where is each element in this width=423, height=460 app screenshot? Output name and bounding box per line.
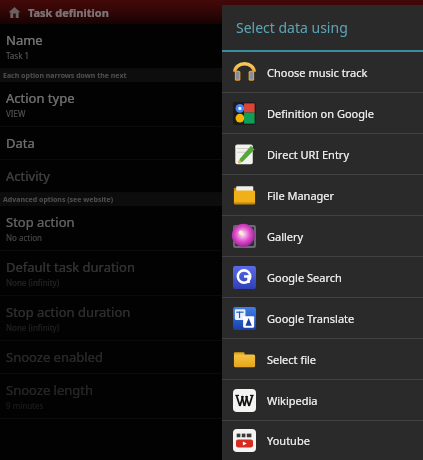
- staticText: None (infinity): [6, 322, 60, 333]
- staticText: Snooze enabled: [6, 348, 103, 366]
- staticText: File Manager: [267, 188, 335, 203]
- button[interactable]: Google Translate: [222, 298, 423, 338]
- button[interactable]: Google Search: [222, 257, 423, 297]
- button[interactable]: Youtube: [222, 421, 423, 460]
- staticText: Youtube: [267, 433, 310, 448]
- staticText: Select data using: [236, 18, 348, 37]
- staticText: Default task duration: [6, 258, 135, 276]
- staticText: Name: [6, 31, 43, 49]
- button[interactable]: Choose music track: [222, 52, 423, 92]
- button[interactable]: Select file: [222, 339, 423, 379]
- staticText: Action type: [6, 89, 75, 107]
- staticText: Advanced options (see website): [3, 195, 114, 205]
- staticText: Snooze length: [6, 381, 94, 399]
- staticText: Google Translate: [267, 311, 355, 326]
- staticText: Select file: [267, 352, 317, 367]
- button[interactable]: Name: [0, 24, 423, 68]
- staticText: Gallery: [267, 229, 304, 244]
- staticText: Task 1: [6, 50, 30, 61]
- staticText: No action: [6, 232, 43, 243]
- button[interactable]: Wikipedia: [222, 380, 423, 420]
- staticText: 9 minutes: [6, 400, 44, 411]
- button[interactable]: Default task duration: [0, 251, 423, 295]
- staticText: Each option narrows down the next: [3, 71, 127, 81]
- staticText: Direct URI Entry: [267, 147, 350, 162]
- staticText: Stop action: [6, 213, 75, 231]
- staticText: Wikipedia: [267, 393, 318, 408]
- button[interactable]: File Manager: [222, 175, 423, 215]
- button[interactable]: Direct URI Entry: [222, 134, 423, 174]
- staticText: Choose music track: [267, 65, 368, 80]
- staticText: Google Search: [267, 270, 342, 285]
- button[interactable]: Action type: [0, 82, 423, 126]
- staticText: Stop action duration: [6, 303, 131, 321]
- staticText: Definition on Google: [267, 106, 375, 121]
- button[interactable]: Stop action: [0, 206, 423, 250]
- button[interactable]: Home: [0, 0, 28, 24]
- staticText: Task definition: [28, 5, 109, 20]
- staticText: None (infinity): [6, 277, 60, 288]
- button[interactable]: Snooze length: [0, 374, 423, 418]
- button[interactable]: Data: [0, 127, 423, 159]
- button[interactable]: Activity: [0, 160, 423, 192]
- button[interactable]: Definition on Google: [222, 93, 423, 133]
- staticText: VIEW: [6, 108, 26, 119]
- button[interactable]: Snooze enabled: [0, 341, 423, 373]
- button[interactable]: Stop action duration: [0, 296, 423, 340]
- button[interactable]: Gallery: [222, 216, 423, 256]
- staticText: Activity: [6, 167, 50, 185]
- staticText: Data: [6, 134, 35, 152]
